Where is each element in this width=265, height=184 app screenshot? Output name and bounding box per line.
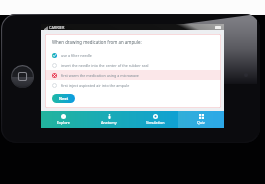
staticText: Quiz bbox=[197, 120, 205, 125]
staticText: first inject aspirated air into the ampu… bbox=[61, 83, 130, 88]
staticText: use a filter needle bbox=[61, 53, 92, 58]
staticText: insert the needle into the center of the… bbox=[61, 63, 149, 68]
staticText: first warm the medication using a microw… bbox=[61, 73, 139, 78]
staticText: Simulation bbox=[146, 120, 165, 125]
button[interactable]: use a filter needle bbox=[45, 50, 221, 60]
staticText: When drawing medication from an ampule: bbox=[52, 39, 142, 45]
other: Simulation bbox=[153, 114, 158, 119]
button[interactable]: Next bbox=[52, 94, 75, 103]
staticText: Anatomy bbox=[101, 120, 117, 125]
button[interactable]: Simulation bbox=[132, 111, 178, 128]
staticText: Explore bbox=[57, 120, 70, 125]
staticText: CARRIER bbox=[49, 25, 65, 30]
staticText: Next bbox=[59, 96, 69, 101]
button[interactable]: Home bbox=[11, 65, 34, 88]
button[interactable]: Quiz bbox=[178, 111, 224, 128]
other: Explore bbox=[61, 114, 66, 119]
button[interactable]: first warm the medication using a microw… bbox=[45, 70, 221, 80]
other: Quiz bbox=[199, 114, 204, 119]
button[interactable]: Explore bbox=[41, 111, 86, 128]
button[interactable]: first inject aspirated air into the ampu… bbox=[45, 80, 221, 90]
button[interactable]: insert the needle into the center of the… bbox=[45, 60, 221, 70]
other: Anatomy bbox=[107, 114, 112, 119]
button[interactable]: Anatomy bbox=[86, 111, 132, 128]
